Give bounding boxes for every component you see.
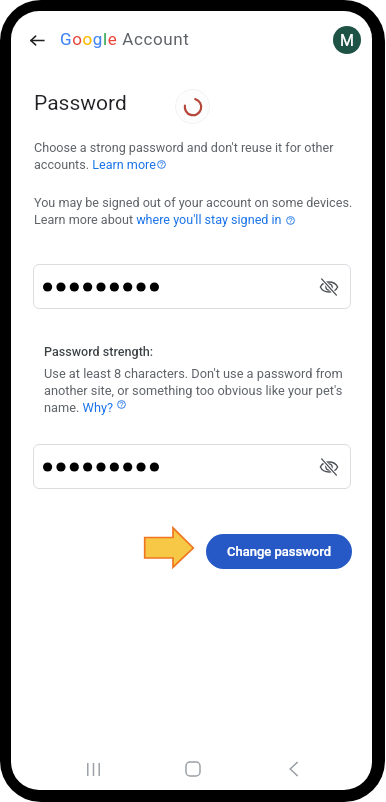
button[interactable]: Show password — [314, 452, 344, 482]
staticText: Password strength: — [44, 344, 154, 359]
staticText: M — [340, 31, 354, 50]
staticText: You may be signed out of your account on… — [34, 194, 356, 228]
button[interactable]: Show password — [33, 264, 351, 309]
button[interactable]: Google Account profile — [326, 19, 367, 60]
button[interactable]: Show password — [33, 444, 351, 489]
staticText: Password — [34, 91, 127, 116]
button[interactable]: Show password — [314, 272, 344, 302]
button[interactable]: Recent apps — [73, 749, 113, 789]
button[interactable]: Home — [173, 749, 213, 789]
staticText: Use at least 8 characters. Don't use a p… — [44, 364, 346, 415]
staticText: Google Account — [60, 29, 190, 49]
staticText: Change password — [227, 544, 332, 559]
button[interactable]: Change password — [206, 534, 352, 569]
button[interactable]: Back — [274, 749, 314, 789]
staticText: Choose a strong password and don't reuse… — [34, 139, 339, 173]
button[interactable]: Back — [20, 23, 54, 57]
